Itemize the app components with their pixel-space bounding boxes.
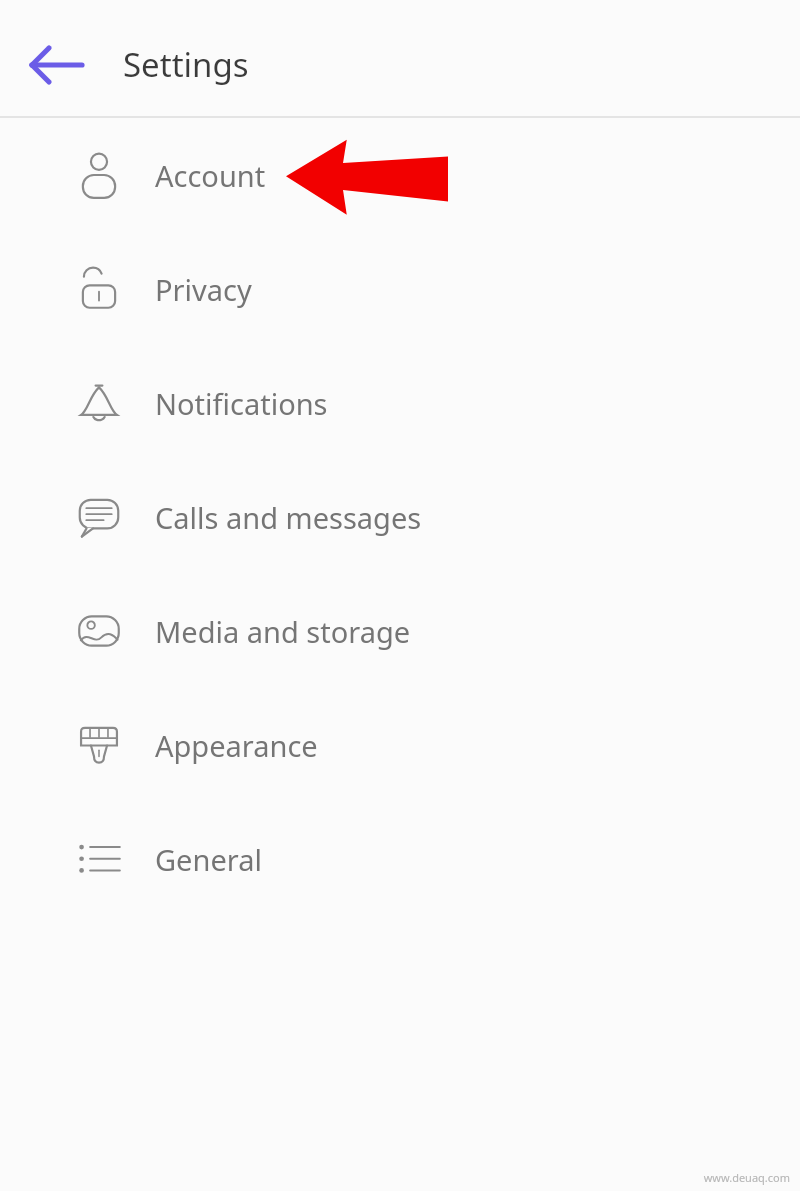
button[interactable]: General bbox=[0, 802, 800, 916]
button[interactable]: Privacy bbox=[0, 232, 800, 346]
button[interactable]: Notifications bbox=[0, 346, 800, 460]
button[interactable]: Appearance bbox=[0, 688, 800, 802]
button[interactable]: Account bbox=[0, 118, 800, 232]
staticText: Appearance bbox=[155, 726, 318, 765]
staticText: www.deuaq.com bbox=[703, 1170, 790, 1185]
staticText: Privacy bbox=[155, 270, 252, 309]
staticText: Media and storage bbox=[155, 612, 411, 651]
staticText: Settings bbox=[123, 42, 249, 87]
button[interactable]: Back bbox=[26, 33, 90, 97]
button[interactable]: Media and storage bbox=[0, 574, 800, 688]
staticText: Account bbox=[155, 156, 266, 195]
staticText: Calls and messages bbox=[155, 498, 422, 537]
staticText: Notifications bbox=[155, 384, 328, 423]
button[interactable]: Calls and messages bbox=[0, 460, 800, 574]
staticText: General bbox=[155, 840, 262, 879]
